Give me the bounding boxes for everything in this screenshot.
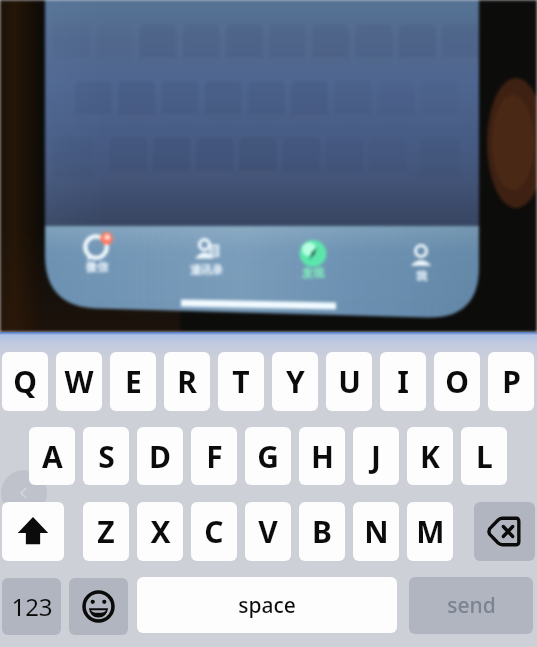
button[interactable]: T	[218, 352, 264, 411]
button[interactable]: I	[380, 352, 426, 411]
button[interactable]: Y	[272, 352, 318, 411]
staticText: M	[416, 511, 445, 552]
staticText: K	[420, 436, 440, 477]
button[interactable]: N	[353, 502, 399, 561]
staticText: F	[206, 436, 223, 477]
button[interactable]: H	[299, 427, 345, 485]
staticText: B	[312, 511, 332, 552]
button[interactable]: 通讯录	[172, 236, 240, 281]
staticText: A	[42, 436, 63, 477]
staticText: X	[150, 511, 171, 552]
button[interactable]: X	[137, 502, 183, 561]
button[interactable]: space	[137, 577, 397, 633]
button[interactable]: A	[29, 427, 75, 485]
button[interactable]: 123	[2, 578, 61, 635]
staticText: L	[476, 436, 493, 477]
button[interactable]: O	[434, 352, 480, 411]
button[interactable]: G	[245, 427, 291, 485]
button[interactable]: 我	[387, 242, 455, 287]
staticText: 微信	[86, 260, 108, 274]
staticText: V	[258, 511, 278, 552]
staticText: U	[338, 361, 361, 402]
staticText: send	[447, 591, 496, 620]
button[interactable]: V	[245, 502, 291, 561]
staticText: O	[445, 361, 469, 402]
button[interactable]: K	[407, 427, 453, 485]
staticText: D	[149, 436, 171, 477]
button[interactable]: F	[191, 427, 237, 485]
button[interactable]: B	[299, 502, 345, 561]
staticText: J	[371, 436, 381, 477]
button[interactable]: Shift	[2, 502, 64, 561]
staticText: 123	[11, 590, 53, 623]
button[interactable]: J	[353, 427, 399, 485]
button[interactable]: 微信	[63, 233, 131, 278]
staticText: 通讯录	[190, 263, 223, 277]
staticText: 我	[416, 269, 427, 283]
staticText: Y	[286, 361, 305, 402]
button[interactable]: R	[164, 352, 210, 411]
staticText: 发现	[302, 266, 324, 280]
staticText: W	[64, 361, 94, 402]
staticText: E	[125, 361, 142, 402]
button[interactable]: Delete	[474, 502, 535, 561]
button[interactable]: Emoji	[69, 578, 128, 635]
button[interactable]: 发现	[279, 239, 347, 284]
button[interactable]: W	[56, 352, 102, 411]
staticText: G	[257, 436, 279, 477]
button[interactable]: U	[326, 352, 372, 411]
staticText: N	[364, 511, 389, 552]
staticText: S	[98, 436, 115, 477]
button[interactable]: Z	[83, 502, 129, 561]
button[interactable]: M	[407, 502, 453, 561]
button[interactable]: send	[409, 577, 533, 634]
button[interactable]: D	[137, 427, 183, 485]
staticText: space	[238, 591, 296, 620]
staticText: Q	[13, 361, 37, 402]
button[interactable]: E	[110, 352, 156, 411]
button[interactable]: P	[488, 352, 534, 411]
staticText: P	[502, 361, 521, 402]
button[interactable]: Back	[1, 470, 47, 516]
staticText: R	[177, 361, 197, 402]
button[interactable]: C	[191, 502, 237, 561]
staticText: C	[204, 511, 224, 552]
staticText: T	[232, 361, 250, 402]
staticText: Z	[97, 511, 115, 552]
button[interactable]: Q	[2, 352, 48, 411]
button[interactable]: S	[83, 427, 129, 485]
staticText: I	[397, 361, 409, 402]
staticText: H	[311, 436, 334, 477]
button[interactable]: L	[461, 427, 507, 485]
